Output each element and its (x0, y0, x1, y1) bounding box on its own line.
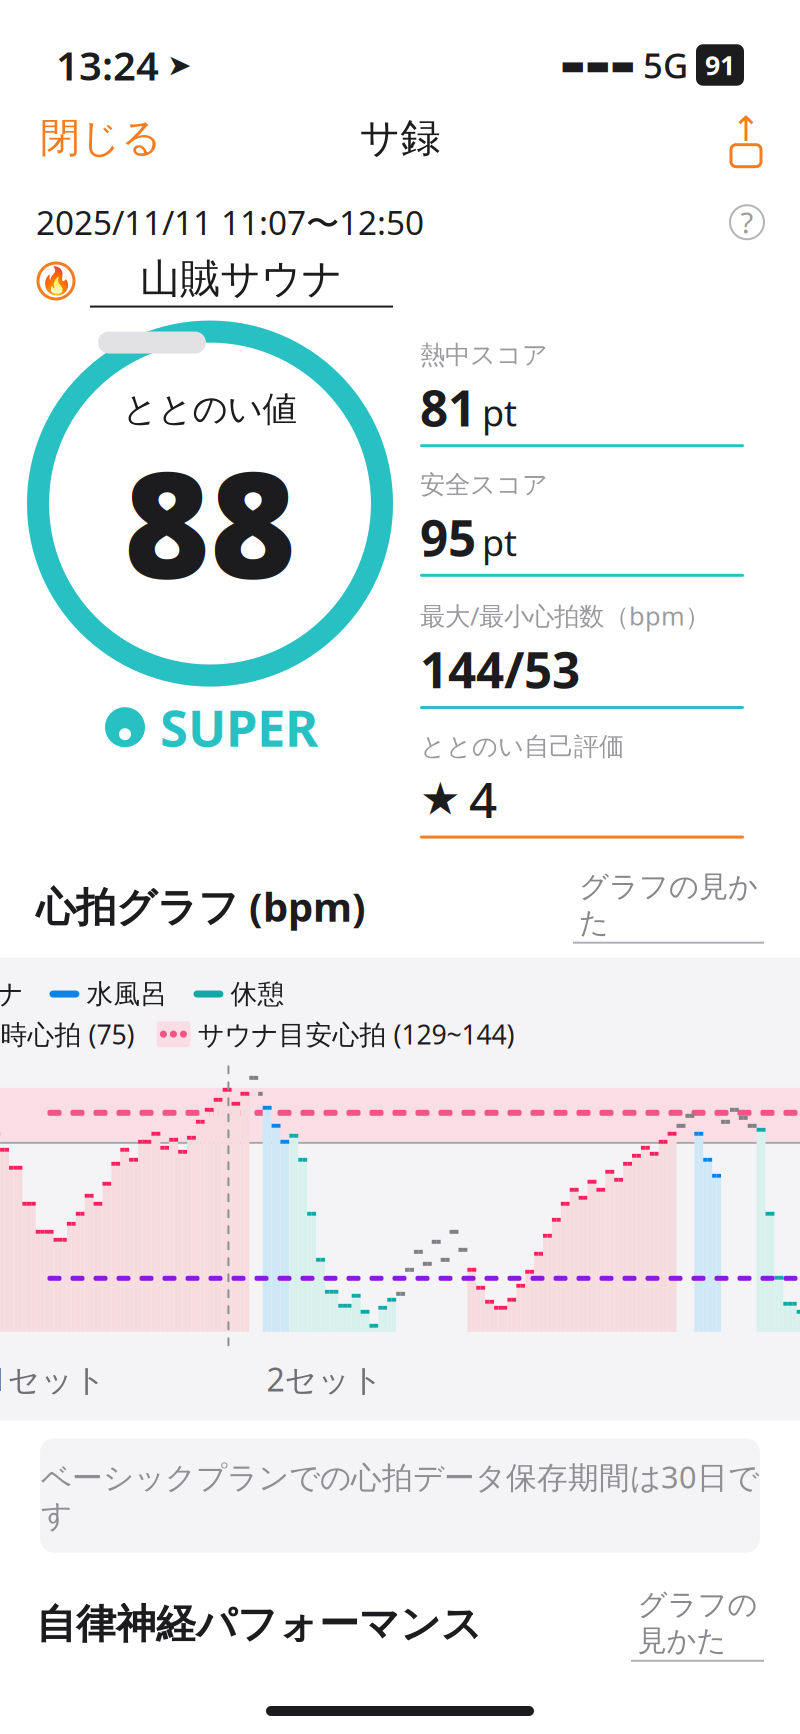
staticText: 安静時心拍 (75) (0, 1016, 134, 1052)
staticText: 91 (705, 47, 735, 83)
staticText: 95 (420, 504, 476, 570)
staticText: 自律神経パフォーマンス (36, 1600, 482, 1649)
staticText: 144/53 (420, 636, 580, 702)
button[interactable]: グラフの見かた (573, 869, 764, 944)
staticText: 1セット (0, 1358, 106, 1400)
staticText: 5G (643, 42, 688, 88)
button[interactable]: ヘルプ (730, 205, 764, 239)
staticText: 最大/最小心拍数（bpm） (420, 599, 710, 632)
staticText: 81 (420, 375, 476, 440)
staticText: ととのい値 (122, 388, 297, 430)
button[interactable]: 🔥 (36, 254, 393, 307)
staticText: 2025/11/11 11:07〜12:50 (36, 200, 424, 244)
staticText: 熱中スコア (420, 340, 548, 371)
staticText: 2セット (266, 1358, 383, 1400)
staticText: ? (740, 203, 753, 242)
staticText: 安全スコア (420, 469, 548, 500)
staticText: ➤ (167, 48, 192, 82)
staticText: SUPER (160, 694, 318, 761)
staticText: 4 (469, 766, 497, 832)
staticText: pt (482, 389, 517, 436)
button[interactable]: 共有 (724, 116, 768, 160)
staticText: 🔥 (39, 266, 72, 296)
staticText: 88 (124, 424, 296, 619)
staticText: pt (482, 518, 517, 566)
staticText: グラフの見かた (637, 1587, 757, 1659)
staticText: 13:24 (56, 38, 159, 91)
button[interactable]: 閉じる (32, 107, 170, 168)
staticText: サ録 (359, 113, 440, 162)
staticText: 水風呂 (86, 978, 167, 1010)
staticText: 心拍グラフ (bpm) (36, 880, 366, 933)
staticText: ↑ (731, 109, 760, 149)
staticText: グラフの見かた (579, 869, 758, 941)
staticText: ととのい自己評価 (420, 731, 624, 762)
staticText: 山賊サウナ (140, 254, 343, 303)
button[interactable]: グラフの見かた (631, 1587, 764, 1662)
staticText: 閉じる (40, 113, 162, 162)
staticText: ベーシックプランでの心拍データ保存期間は30日です (41, 1456, 759, 1535)
staticText: サウナ目安心拍 (129~144) (197, 1016, 514, 1052)
staticText: ★ (420, 773, 461, 825)
staticText: ▬▬▬ (560, 50, 635, 80)
staticText: 休憩 (230, 978, 284, 1010)
staticText: サウナ (0, 978, 23, 1010)
